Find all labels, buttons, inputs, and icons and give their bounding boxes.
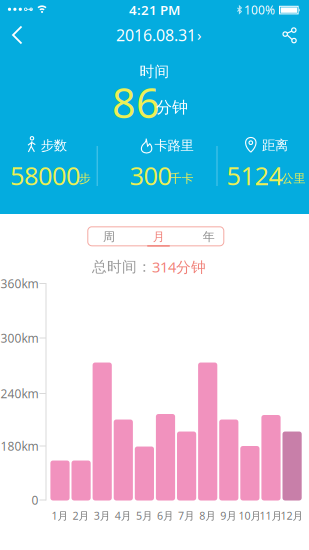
staticText: 4月 [115, 508, 132, 523]
staticText: 千卡 [169, 171, 193, 186]
staticText: 58000 [10, 158, 80, 192]
staticText: 5月 [136, 508, 153, 523]
staticText: 180km [0, 438, 38, 454]
staticText: 240km [0, 385, 38, 401]
staticText: 100% [244, 2, 275, 18]
staticText: 公里 [281, 171, 305, 186]
staticText: 2016.08.31 [116, 24, 196, 46]
button[interactable]: 月 [136, 227, 181, 246]
staticText: 3月 [94, 508, 111, 523]
button[interactable]: 年 [186, 227, 231, 246]
staticText: 6月 [157, 508, 174, 523]
staticText: 360km [0, 275, 38, 291]
staticText: 4:21 PM [129, 1, 180, 19]
staticText: 总时间： [92, 258, 152, 276]
staticText: 7月 [178, 508, 195, 523]
button[interactable]: 2016.08.31 [116, 24, 202, 46]
staticText: 314分钟 [152, 257, 206, 277]
staticText: 步数 [41, 137, 67, 154]
staticText: 年 [203, 229, 215, 244]
staticText: 周 [103, 229, 115, 244]
staticText: 0 [31, 492, 38, 508]
staticText: 12月 [281, 508, 304, 523]
staticText: 2月 [73, 508, 90, 523]
button[interactable]: Share [280, 25, 300, 45]
staticText: 距离 [262, 137, 288, 153]
staticText: 分钟 [156, 97, 188, 117]
staticText: 时间 [139, 62, 169, 80]
staticText: 300 [129, 158, 171, 192]
staticText: 步 [79, 171, 91, 186]
staticText: 5124 [226, 158, 282, 192]
staticText: 86 [112, 75, 160, 130]
staticText: 10月 [238, 508, 261, 523]
staticText: 1月 [51, 508, 68, 523]
staticText: 卡路里 [154, 137, 193, 154]
staticText: 9月 [220, 508, 237, 523]
staticText: 300km [0, 330, 38, 346]
button[interactable]: Back [1, 20, 31, 50]
button[interactable]: 周 [86, 227, 131, 246]
staticText: 11月 [259, 508, 282, 523]
staticText: 月 [153, 229, 165, 244]
staticText: › [197, 25, 202, 45]
staticText: 8月 [199, 508, 216, 523]
